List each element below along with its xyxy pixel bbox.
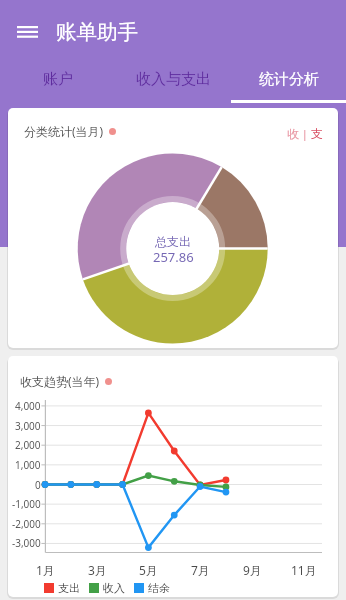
staticText: 统计分析 [259,70,319,89]
staticText: -3,000 [12,536,41,550]
staticText: 1,000 [15,458,41,472]
staticText: 4,000 [15,399,41,413]
staticText: 收 [287,126,299,141]
staticText: 分类统计(当月) [24,123,104,139]
staticText: 9月 [243,562,262,578]
button[interactable]: 账户 [0,56,116,103]
staticText: 支 [311,126,323,141]
staticText: 结余 [148,581,170,595]
staticText: 2,000 [15,438,41,452]
staticText: 5月 [139,562,158,578]
staticText: 收入 [103,581,125,595]
staticText: 收入与支出 [136,70,211,89]
button[interactable]: 统计分析 [231,56,346,103]
staticText: 总支出 [155,234,191,249]
staticText: 0 [35,478,41,492]
staticText: | [299,126,311,141]
staticText: 7月 [191,562,210,578]
staticText: 257.86 [153,248,194,265]
staticText: 3,000 [15,419,41,433]
staticText: 3月 [88,562,107,578]
staticText: 收支趋势(当年) [20,373,100,389]
button[interactable] [0,4,56,60]
staticText: 11月 [291,562,317,578]
button[interactable]: 收 [287,126,323,141]
staticText: 支出 [58,581,80,595]
staticText: 账户 [43,70,73,89]
staticText: 账单助手 [56,19,138,45]
staticText: 1月 [36,562,55,578]
button[interactable]: 收入与支出 [116,56,231,103]
staticText: -1,000 [12,497,41,511]
staticText: -2,000 [12,517,41,531]
